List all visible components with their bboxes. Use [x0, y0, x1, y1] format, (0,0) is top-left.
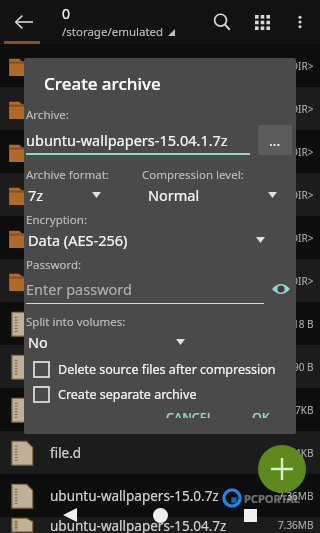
staticText: Movies — [50, 229, 285, 247]
staticText: Normal — [148, 185, 200, 205]
button[interactable]: No — [28, 331, 292, 353]
button[interactable]: Data (AES-256) — [28, 229, 292, 251]
staticText: CANCEL — [166, 409, 214, 418]
staticText: Enter password — [26, 279, 132, 299]
button[interactable]: Movies — [0, 216, 320, 259]
button[interactable]: ubuntu-wallpapers-15.0.7z — [0, 474, 320, 517]
staticText: <DIR> — [285, 188, 314, 202]
button[interactable]: Show password — [270, 278, 292, 300]
staticText: PCPORTAL — [244, 491, 300, 506]
staticText: file.c — [50, 401, 295, 419]
button[interactable]: Alarms — [0, 44, 320, 87]
button[interactable]: Delete source files after compression — [34, 361, 296, 378]
button[interactable]: More options — [282, 4, 318, 40]
button[interactable]: Enter password — [26, 279, 292, 304]
button[interactable]: file.d — [0, 431, 320, 474]
button[interactable]: file.b — [0, 345, 320, 388]
button[interactable]: Add — [258, 445, 306, 493]
staticText: Password: — [26, 257, 82, 273]
button[interactable]: Music — [0, 259, 320, 302]
staticText: 7z — [28, 185, 44, 205]
staticText: 7.36MB — [278, 489, 314, 503]
staticText: Data (AES-256) — [28, 230, 128, 250]
staticText: 7KB — [295, 403, 314, 417]
button[interactable]: Download — [0, 173, 320, 216]
staticText: Create archive — [44, 72, 161, 95]
button[interactable]: Android — [0, 87, 320, 130]
staticText: Music — [50, 272, 285, 290]
button[interactable]: file.a — [0, 302, 320, 345]
button[interactable]: Create separate archive — [34, 386, 296, 403]
staticText: <DIR> — [285, 231, 314, 245]
staticText: Download — [50, 186, 285, 204]
staticText: OK — [252, 409, 270, 418]
button[interactable]: CANCEL — [158, 403, 222, 424]
staticText: file.d — [50, 444, 295, 462]
button[interactable]: Recents — [230, 497, 270, 533]
button[interactable]: file.c — [0, 388, 320, 431]
staticText: ubuntu-wallpapers-15.04.7z — [50, 517, 278, 533]
staticText: <DIR> — [285, 274, 314, 288]
staticText: ubuntu-wallpapers-15.0.7z — [50, 487, 278, 505]
staticText: file.b — [50, 358, 293, 376]
staticText: No — [28, 332, 48, 352]
button[interactable]: DCIM — [0, 130, 320, 173]
button[interactable]: ubuntu-wallpapers-15.04.1.7z — [26, 130, 250, 155]
staticText: Archive: — [26, 107, 69, 123]
button[interactable]: Back — [6, 4, 42, 40]
button[interactable]: Browse — [258, 125, 292, 155]
button[interactable]: OK — [244, 403, 278, 424]
staticText: 0 — [62, 4, 71, 23]
button[interactable]: Back — [50, 497, 90, 533]
staticText: Android — [50, 100, 285, 118]
staticText: file.a — [50, 315, 293, 333]
staticText: <DIR> — [285, 145, 314, 159]
staticText: 90 B — [293, 360, 314, 374]
button[interactable]: Search — [202, 2, 242, 42]
staticText: 7.36MB — [278, 518, 314, 532]
staticText: 18 B — [293, 317, 314, 331]
staticText: Delete source files after compression — [58, 361, 276, 378]
staticText: Encryption: — [26, 212, 87, 228]
button[interactable]: Normal — [148, 184, 292, 206]
staticText: /storage/emulated — [62, 24, 164, 40]
staticText: Create separate archive — [58, 386, 197, 403]
staticText: Alarms — [50, 57, 285, 75]
button[interactable]: Grid view — [242, 2, 282, 42]
staticText: Compression level: — [142, 167, 244, 183]
button[interactable]: 7z — [28, 184, 132, 206]
staticText: Archive format: — [26, 167, 109, 183]
staticText: <DIR> — [285, 59, 314, 73]
staticText: Split into volumes: — [26, 314, 126, 330]
staticText: ... — [269, 131, 281, 150]
staticText: <DIR> — [285, 102, 314, 116]
staticText: ubuntu-wallpapers-15.04.1.7z — [26, 130, 228, 150]
staticText: 4KB — [295, 446, 314, 460]
staticText: DCIM — [50, 143, 285, 161]
button[interactable]: ubuntu-wallpapers-15.04.7z — [0, 517, 320, 533]
button[interactable]: Home — [140, 497, 180, 533]
